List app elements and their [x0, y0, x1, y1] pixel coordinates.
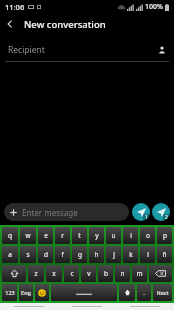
staticText: m: [136, 269, 143, 278]
button[interactable]: x: [46, 265, 62, 282]
button[interactable]: Navigation 1: [58, 303, 116, 310]
staticText: u: [111, 231, 116, 240]
button[interactable]: h: [89, 246, 104, 263]
staticText: c: [70, 269, 74, 278]
staticText: o: [146, 231, 150, 240]
staticText: New conversation: [24, 18, 106, 31]
staticText: s: [26, 250, 30, 259]
button[interactable]: Pick contact: [156, 44, 168, 56]
button[interactable]: l: [140, 246, 155, 263]
staticText: .: [143, 289, 145, 297]
button[interactable]: Next: [153, 284, 172, 301]
button[interactable]: Shift: [2, 265, 26, 282]
button[interactable]: Enter message: [4, 203, 129, 221]
button[interactable]: f: [55, 246, 70, 263]
staticText: h: [94, 250, 99, 259]
button[interactable]: j: [106, 246, 121, 263]
staticText: b: [104, 269, 108, 278]
button[interactable]: Back: [0, 14, 20, 34]
button[interactable]: k: [123, 246, 138, 263]
button[interactable]: ñ: [157, 246, 172, 263]
staticText: 2: [165, 214, 168, 221]
staticText: 100%: [145, 2, 163, 12]
button[interactable]: v: [81, 265, 96, 282]
staticText: q: [8, 231, 12, 240]
button[interactable]: o: [140, 227, 155, 244]
staticText: d: [44, 250, 48, 259]
staticText: k: [129, 250, 133, 259]
button[interactable]: z: [28, 265, 44, 282]
staticText: 1: [145, 214, 148, 221]
staticText: n: [120, 269, 125, 278]
staticText: p: [163, 231, 167, 240]
staticText: l: [147, 250, 149, 259]
button[interactable]: Space: [51, 284, 117, 301]
staticText: Recipient: [8, 44, 45, 56]
staticText: a: [8, 250, 12, 259]
staticText: x: [52, 269, 56, 278]
staticText: v: [87, 269, 91, 278]
button[interactable]: g: [72, 246, 87, 263]
button[interactable]: b: [98, 265, 113, 282]
staticText: Enter message: [22, 207, 78, 218]
staticText: e: [44, 231, 48, 240]
staticText: Next: [156, 289, 169, 296]
button[interactable]: w: [20, 227, 36, 244]
staticText: z: [34, 269, 38, 278]
button[interactable]: c: [64, 265, 79, 282]
button[interactable]: s: [20, 246, 36, 263]
button[interactable]: Recipient: [0, 42, 174, 58]
button[interactable]: p: [157, 227, 172, 244]
staticText: w: [25, 231, 31, 240]
button[interactable]: t: [72, 227, 87, 244]
staticText: Eng: [21, 289, 31, 296]
button[interactable]: r: [55, 227, 70, 244]
staticText: ñ: [162, 250, 167, 259]
staticText: g: [78, 250, 82, 259]
button[interactable]: Navigation 0: [0, 303, 58, 310]
button[interactable]: .: [137, 284, 151, 301]
button[interactable]: u: [106, 227, 121, 244]
staticText: t: [78, 231, 81, 240]
staticText: i: [130, 231, 132, 240]
button[interactable]: y: [89, 227, 104, 244]
button[interactable]: q: [2, 227, 18, 244]
button[interactable]: i: [123, 227, 138, 244]
button[interactable]: Eng: [19, 284, 33, 301]
button[interactable]: Voice input: [119, 284, 135, 301]
button[interactable]: 123: [2, 284, 17, 301]
button[interactable]: e: [38, 227, 53, 244]
button[interactable]: d: [38, 246, 53, 263]
staticText: f: [61, 250, 64, 259]
button[interactable]: m: [132, 265, 147, 282]
staticText: y: [95, 231, 99, 240]
staticText: j: [113, 250, 115, 259]
button[interactable]: Send with SIM 2: [152, 203, 170, 221]
button[interactable]: n: [115, 265, 130, 282]
staticText: r: [61, 231, 64, 240]
button[interactable]: Emoji: [35, 284, 49, 301]
button[interactable]: Send with SIM 1: [132, 203, 150, 221]
button[interactable]: Navigation 2: [116, 303, 174, 310]
button[interactable]: a: [2, 246, 18, 263]
staticText: 11:06: [5, 2, 25, 12]
staticText: 123: [5, 289, 15, 296]
button[interactable]: Backspace: [149, 265, 172, 282]
